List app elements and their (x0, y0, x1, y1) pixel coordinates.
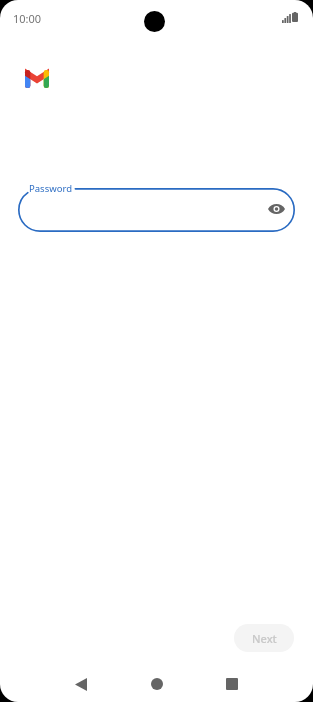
button[interactable]: Recent apps (212, 664, 252, 702)
staticText: 10:00 (13, 11, 42, 26)
staticText: Next (252, 631, 277, 646)
button[interactable]: Next (234, 624, 294, 652)
button[interactable]: Show password (258, 191, 294, 227)
button[interactable]: Back (61, 664, 101, 702)
button[interactable]: Home (137, 664, 177, 702)
staticText: Password (29, 182, 72, 195)
